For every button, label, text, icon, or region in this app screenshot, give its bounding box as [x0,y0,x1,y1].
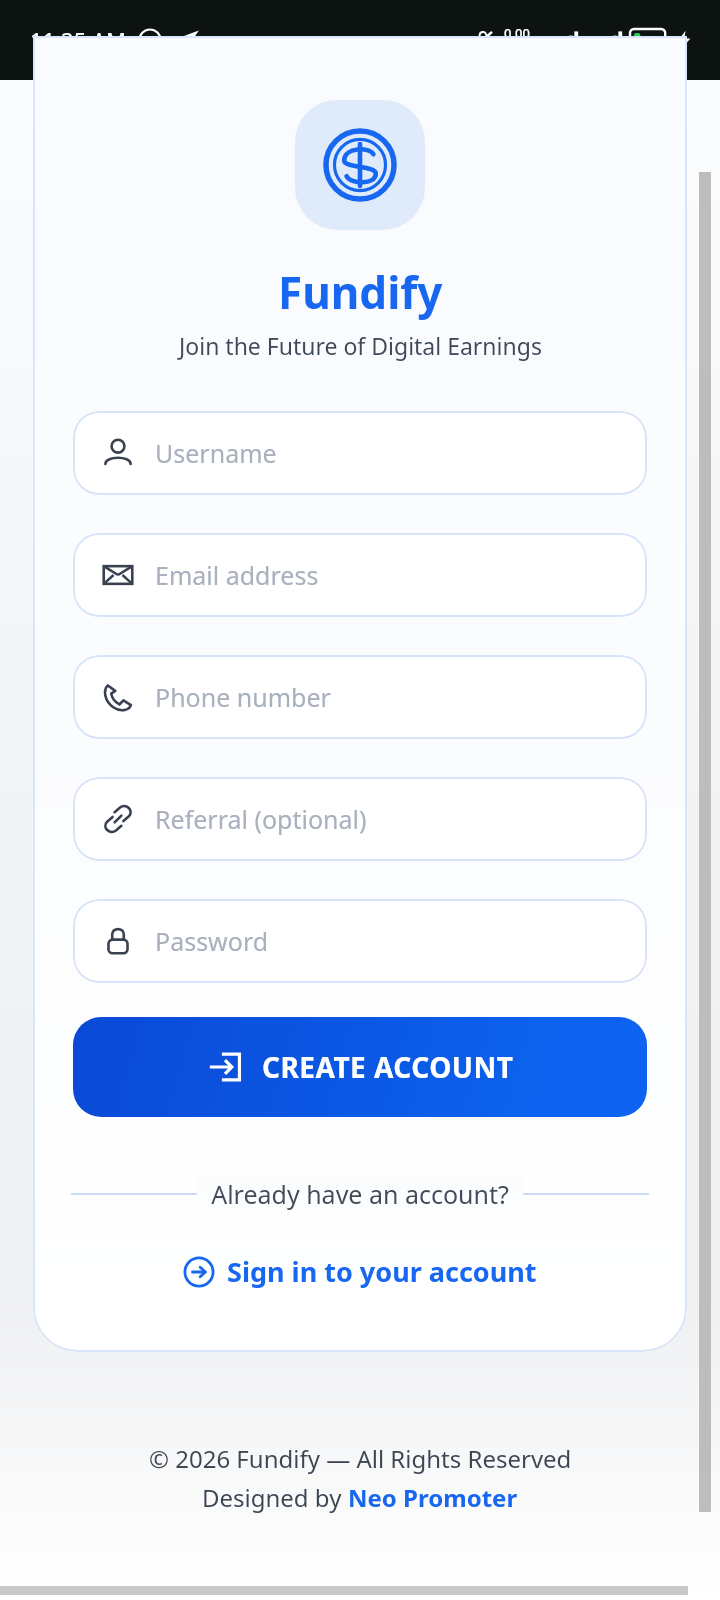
staticText: Join the Future of Digital Earnings [179,330,542,361]
staticText: Sign in to your account [227,1253,537,1290]
button[interactable]: Sign in to your account [169,1247,551,1296]
button[interactable]: Username [73,411,647,495]
staticText: Fundify [278,262,443,322]
staticText: 4G [540,34,556,50]
staticText: 11:25 AM [30,25,126,55]
staticText: Neo Promoter [348,1481,518,1514]
button[interactable]: Password [73,899,647,983]
staticText: Already have an account? [211,1177,509,1211]
staticText: CREATE ACCOUNT [262,1048,514,1086]
staticText: Referral (optional) [155,802,367,836]
button[interactable]: CREATE ACCOUNT [73,1017,647,1117]
staticText: Username [155,436,277,470]
button[interactable]: Referral (optional) [73,777,647,861]
staticText: Email address [155,558,319,592]
staticText: Phone number [155,680,331,714]
staticText: Designed by [202,1481,348,1514]
button[interactable]: Email address [73,533,647,617]
button[interactable]: Phone number [73,655,647,739]
staticText: 4G [584,34,600,50]
button[interactable]: Neo Promoter [348,1481,518,1514]
staticText: 0.00 [504,24,530,42]
staticText: Password [155,924,269,958]
staticText: © 2026 Fundify — All Rights Reserved [149,1442,572,1475]
